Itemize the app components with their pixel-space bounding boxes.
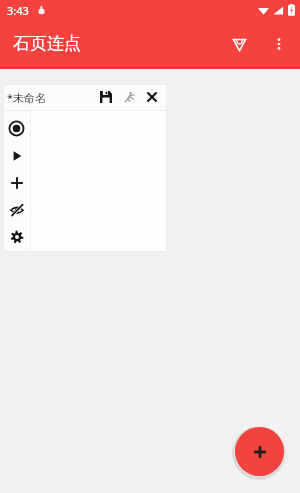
staticText: *未命名 [7,90,47,105]
button[interactable]: More options [260,25,298,63]
button[interactable]: Play [3,142,30,169]
button[interactable]: Run script [119,87,139,107]
button[interactable]: Close [142,87,162,107]
button[interactable]: Save [96,87,116,107]
button[interactable]: Settings [3,223,30,250]
staticText: 3:43 [7,3,29,18]
button[interactable]: VIP [218,23,260,65]
button[interactable]: Add [235,427,284,476]
button[interactable]: Record [3,115,30,142]
button[interactable]: Add [3,169,30,196]
button[interactable]: Hide [3,196,30,223]
staticText: 石页连点 [13,33,81,54]
